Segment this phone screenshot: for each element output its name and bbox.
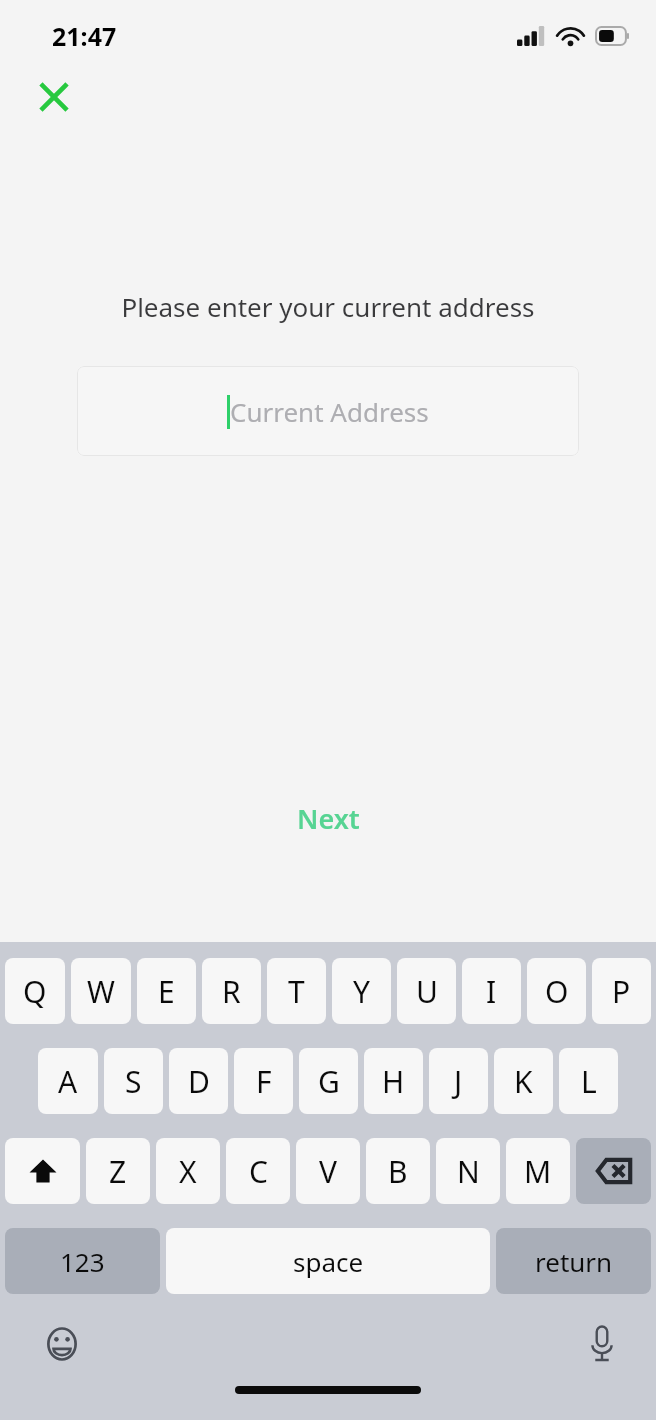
staticText: B xyxy=(388,1151,408,1192)
button[interactable]: J xyxy=(429,1048,488,1114)
button[interactable]: Backspace xyxy=(576,1138,651,1204)
staticText: R xyxy=(222,971,241,1012)
button[interactable]: I xyxy=(462,958,521,1024)
button[interactable]: O xyxy=(527,958,586,1024)
staticText: K xyxy=(514,1061,533,1102)
staticText: 123 xyxy=(60,1244,105,1279)
staticText: T xyxy=(288,971,305,1012)
staticText: Y xyxy=(353,971,370,1012)
button[interactable]: C xyxy=(226,1138,290,1204)
staticText: space xyxy=(293,1244,364,1279)
button[interactable]: Y xyxy=(332,958,391,1024)
staticText: G xyxy=(318,1061,340,1102)
button[interactable]: V xyxy=(296,1138,360,1204)
button[interactable]: X xyxy=(156,1138,220,1204)
staticText: Next xyxy=(297,800,360,837)
staticText: F xyxy=(256,1061,272,1102)
button[interactable]: 123 xyxy=(5,1228,160,1294)
staticText: Current Address xyxy=(230,394,429,429)
button[interactable]: Q xyxy=(5,958,65,1024)
button[interactable]: Shift xyxy=(5,1138,80,1204)
button[interactable]: K xyxy=(494,1048,553,1114)
staticText: C xyxy=(249,1151,268,1192)
staticText: E xyxy=(158,971,175,1012)
button[interactable]: U xyxy=(397,958,456,1024)
staticText: N xyxy=(457,1151,480,1192)
button[interactable]: A xyxy=(38,1048,98,1114)
button[interactable]: space xyxy=(166,1228,490,1294)
staticText: S xyxy=(125,1061,142,1102)
button[interactable]: W xyxy=(71,958,131,1024)
staticText: O xyxy=(545,971,569,1012)
staticText: W xyxy=(87,971,115,1012)
button[interactable]: F xyxy=(234,1048,293,1114)
staticText: A xyxy=(58,1061,78,1102)
button[interactable]: N xyxy=(436,1138,500,1204)
button[interactable]: T xyxy=(267,958,326,1024)
button[interactable]: R xyxy=(202,958,261,1024)
staticText: return xyxy=(535,1244,613,1279)
staticText: 21:47 xyxy=(52,19,117,53)
button[interactable]: G xyxy=(299,1048,358,1114)
staticText: H xyxy=(382,1061,405,1102)
staticText: M xyxy=(524,1151,552,1192)
button[interactable]: Voice input xyxy=(578,1320,626,1368)
button[interactable]: H xyxy=(364,1048,423,1114)
button[interactable]: B xyxy=(366,1138,430,1204)
staticText: P xyxy=(612,971,631,1012)
staticText: D xyxy=(188,1061,210,1102)
staticText: I xyxy=(486,971,497,1012)
button[interactable]: P xyxy=(592,958,651,1024)
button[interactable]: Next xyxy=(283,794,374,843)
button[interactable]: Close xyxy=(30,73,78,121)
staticText: Please enter your current address xyxy=(0,289,656,324)
button[interactable]: D xyxy=(169,1048,228,1114)
staticText: Z xyxy=(109,1151,127,1192)
button[interactable]: Emoji xyxy=(38,1320,86,1368)
staticText: Q xyxy=(23,971,47,1012)
button[interactable]: E xyxy=(137,958,196,1024)
staticText: X xyxy=(179,1151,197,1192)
staticText: L xyxy=(581,1061,597,1102)
staticText: U xyxy=(416,971,438,1012)
button[interactable]: Current Address xyxy=(77,366,579,456)
button[interactable]: return xyxy=(496,1228,651,1294)
button[interactable]: S xyxy=(104,1048,163,1114)
button[interactable]: M xyxy=(506,1138,570,1204)
button[interactable]: L xyxy=(559,1048,618,1114)
staticText: V xyxy=(319,1151,337,1192)
staticText: J xyxy=(454,1061,463,1102)
button[interactable]: Z xyxy=(86,1138,150,1204)
